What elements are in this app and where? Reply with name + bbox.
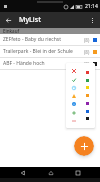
staticText: Trailerpark - Blei in der Schule: [3, 48, 84, 55]
button[interactable]: Menu action: [70, 84, 77, 91]
button[interactable]: Menu action: [70, 76, 77, 83]
button[interactable]: Menu action: [70, 100, 77, 107]
button[interactable]: Menu action: [70, 109, 77, 116]
button[interactable]: Home: [45, 167, 56, 178]
button[interactable]: Back: [0, 12, 16, 28]
staticText: (8): [84, 61, 90, 67]
button[interactable]: Back: [17, 167, 28, 178]
button[interactable]: ZEFfeto - Baby du riechst: [0, 34, 100, 45]
staticText: Einkauf: [3, 28, 20, 34]
button[interactable]: Menu action: [70, 67, 77, 74]
button[interactable]: More options: [84, 12, 100, 28]
button[interactable]: Menu action: [70, 117, 77, 124]
button[interactable]: Recent apps: [72, 167, 83, 178]
staticText: (8): [84, 37, 90, 43]
staticText: ABF - Hände hoch: [3, 60, 84, 67]
staticText: ZEFfeto - Baby du riechst: [3, 36, 84, 43]
button[interactable]: Menu action: [70, 92, 77, 99]
staticText: 21:14: [85, 3, 98, 10]
staticText: (8): [84, 49, 90, 55]
button[interactable]: ABF - Hände hoch: [0, 58, 100, 69]
staticText: MyList: [19, 15, 41, 25]
button[interactable]: Trailerpark - Blei in der Schule: [0, 46, 100, 57]
button[interactable]: Add item: [74, 136, 94, 156]
